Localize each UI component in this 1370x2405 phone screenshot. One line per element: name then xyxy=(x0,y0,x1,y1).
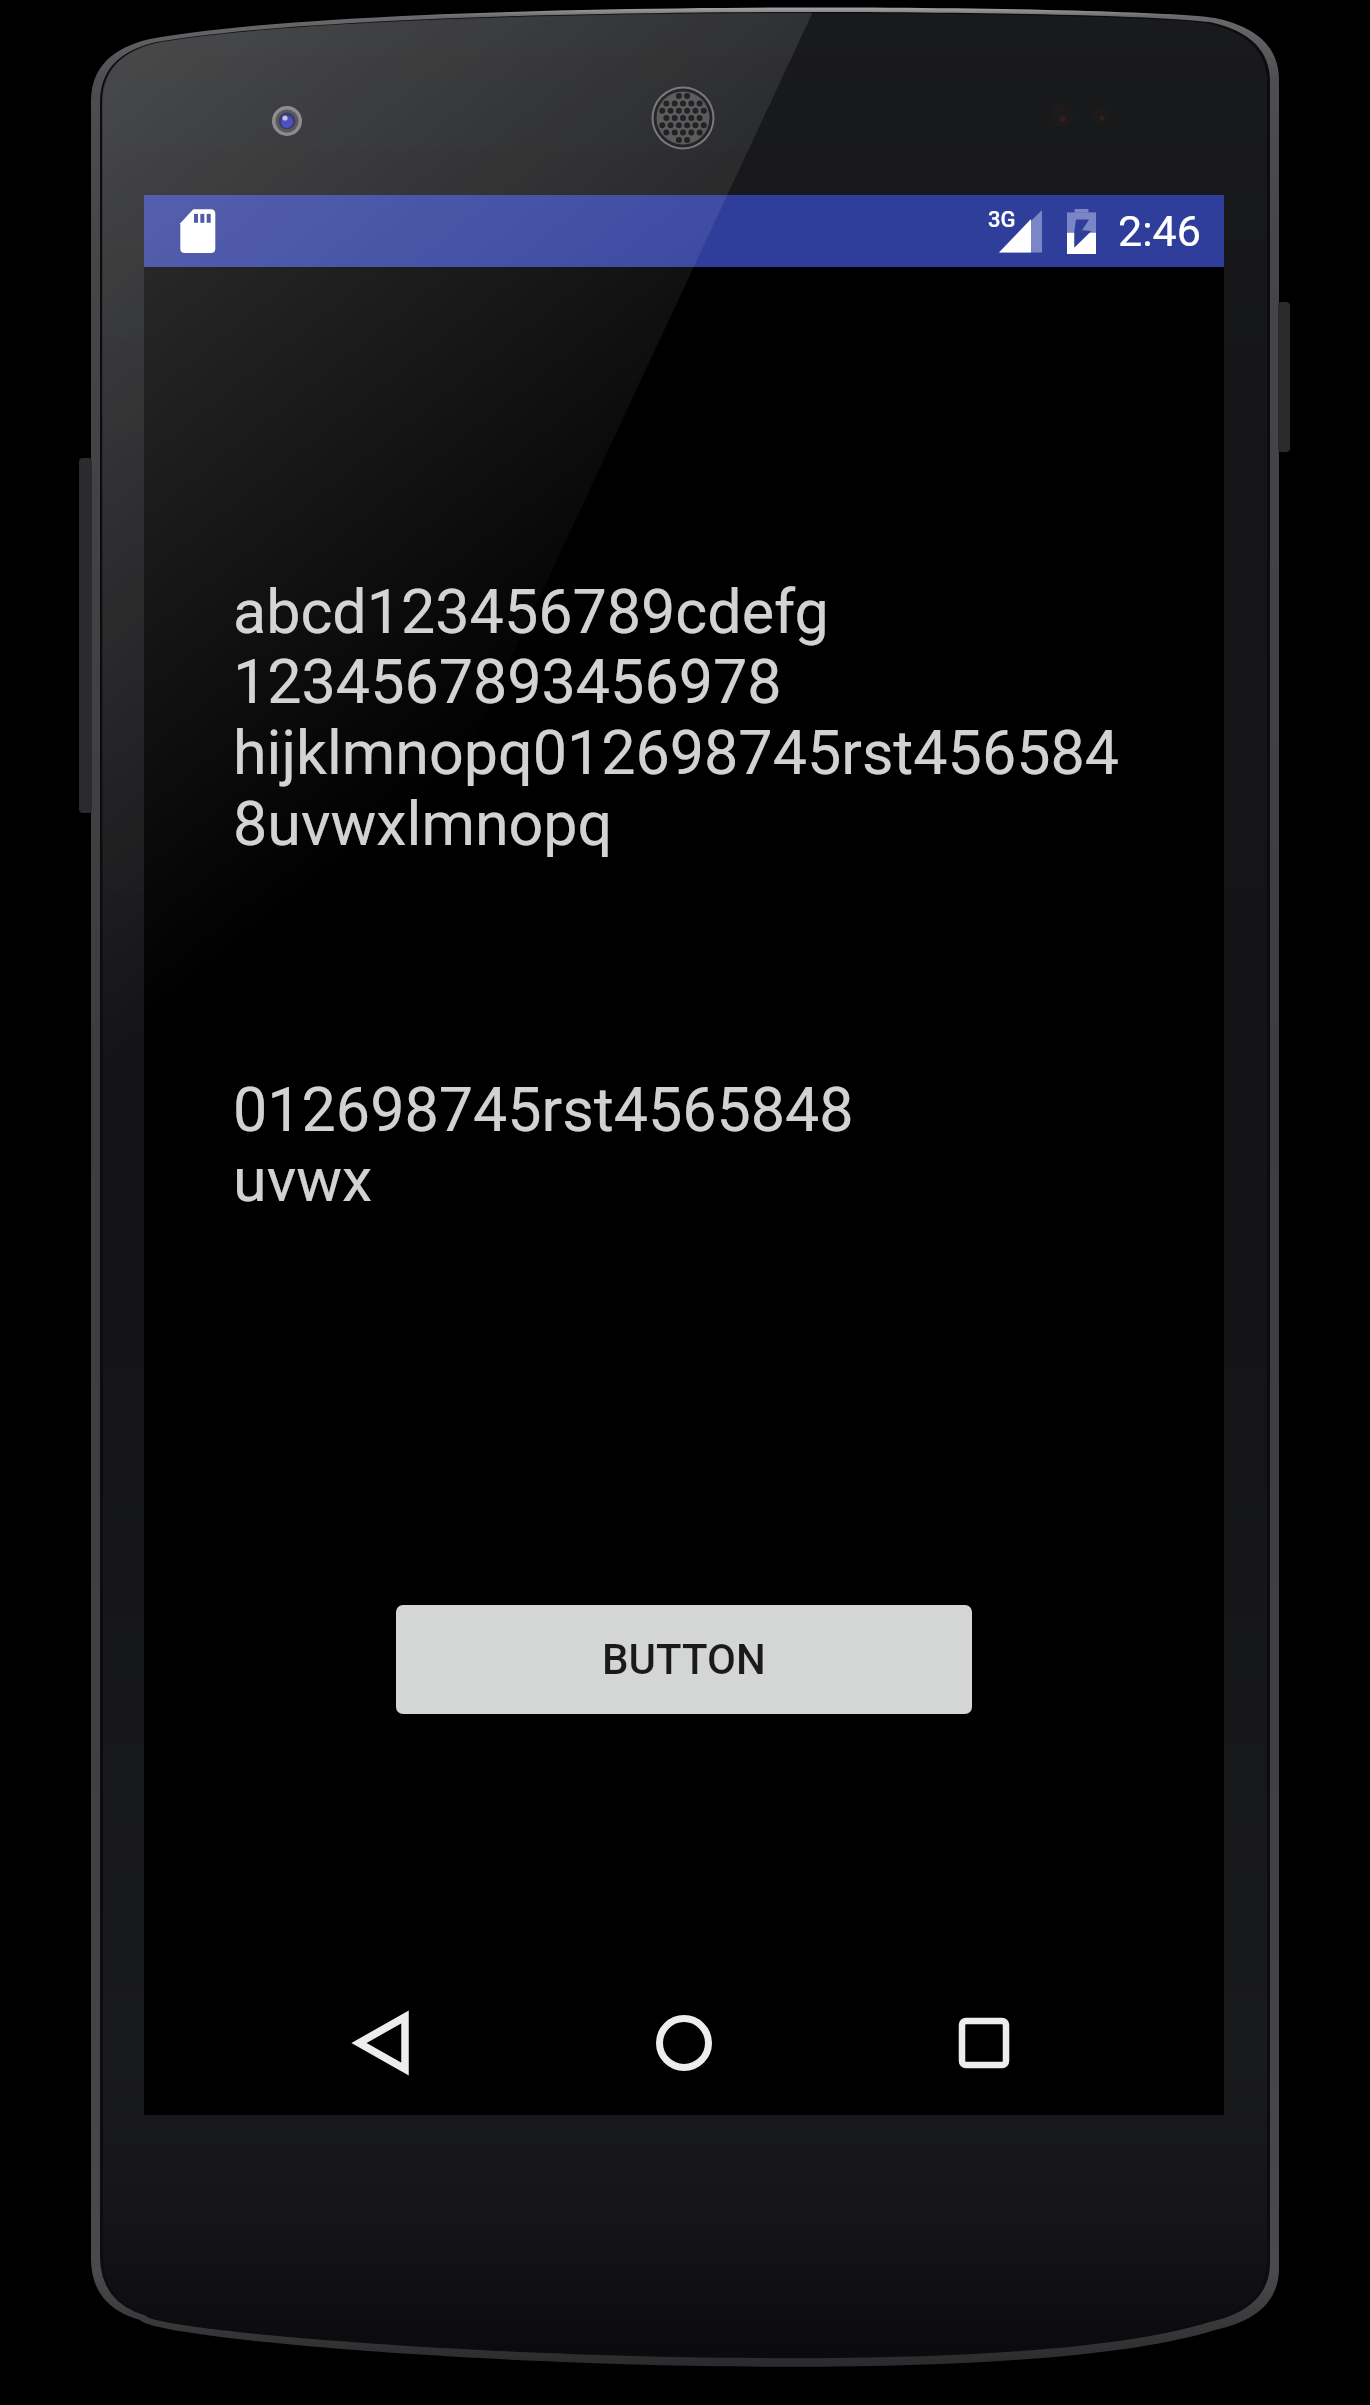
staticText: 012698745rst4565848 uvwx xyxy=(233,1074,854,1216)
button[interactable]: BUTTON xyxy=(396,1605,972,1714)
button[interactable]: Recent apps xyxy=(914,1973,1054,2113)
staticText: abcd123456789cdefg 1234567893456978 hijk… xyxy=(233,576,1120,860)
button[interactable]: Back xyxy=(314,1973,454,2113)
staticText: BUTTON xyxy=(602,1635,766,1684)
staticText: 3G xyxy=(988,207,1016,233)
button[interactable]: Home xyxy=(614,1973,754,2113)
staticText: 2:46 xyxy=(1118,206,1201,256)
